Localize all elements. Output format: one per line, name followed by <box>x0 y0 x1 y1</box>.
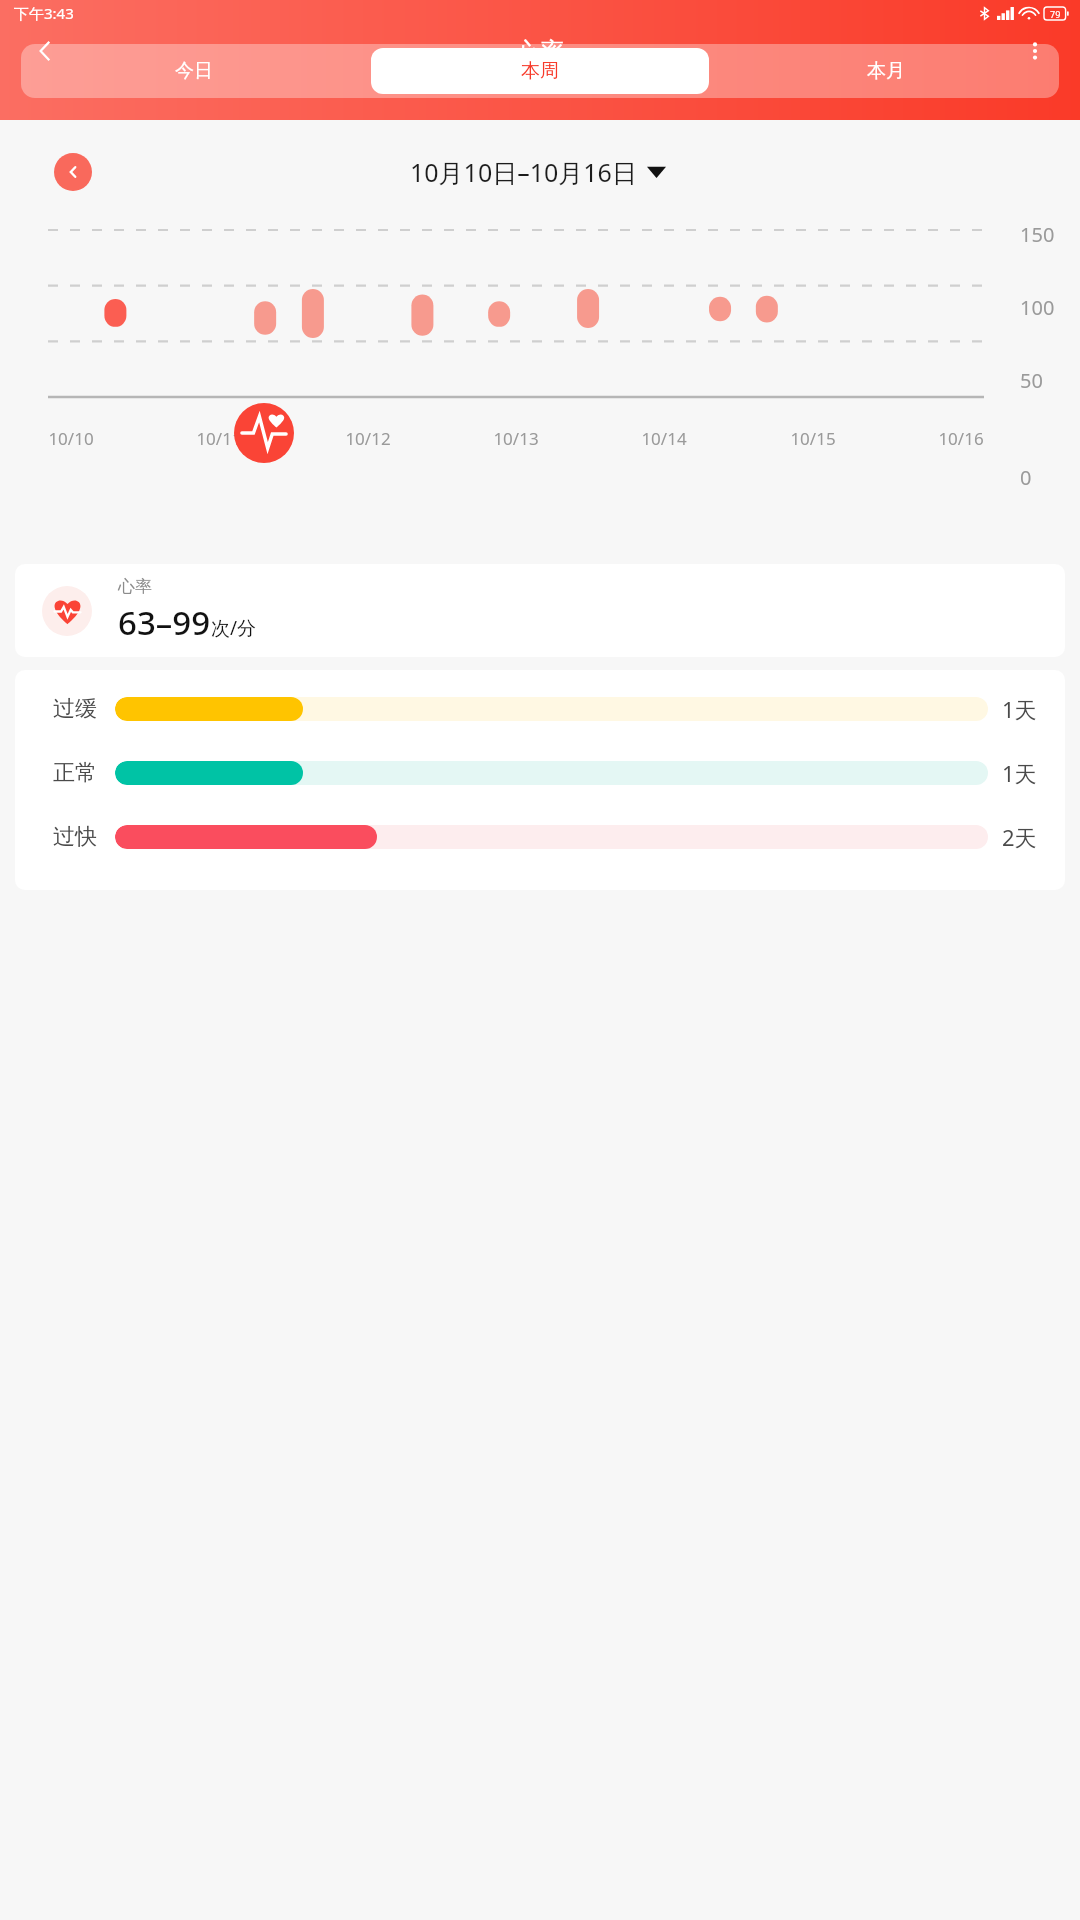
staticText: 过快 <box>53 823 97 851</box>
staticText: 63–99 <box>118 600 211 645</box>
button[interactable]: 今日 <box>25 48 363 94</box>
button[interactable]: 心率 <box>15 564 1065 657</box>
staticText: 10月10日–10月16日 <box>410 155 637 189</box>
staticText: 今日 <box>175 59 213 83</box>
button[interactable]: 本周 <box>371 48 709 94</box>
staticText: 79 <box>1050 8 1061 20</box>
button[interactable]: 正常 <box>53 756 1037 790</box>
staticText: 次/分 <box>211 615 257 641</box>
staticText: 10/11 <box>196 427 242 450</box>
button[interactable]: 本月 <box>717 48 1055 94</box>
staticText: 10/14 <box>641 427 687 450</box>
staticText: 心率 <box>118 576 152 597</box>
staticText: 10/15 <box>790 427 836 450</box>
staticText: 10/13 <box>493 427 539 450</box>
staticText: 0 <box>1020 464 1032 491</box>
button[interactable]: 过快 <box>53 820 1037 854</box>
staticText: 2天 <box>1002 822 1037 852</box>
staticText: 心率 <box>515 36 565 67</box>
staticText: 正常 <box>53 759 97 787</box>
staticText: 100 <box>1020 294 1055 321</box>
button[interactable]: More options <box>1012 28 1058 74</box>
button[interactable]: Back <box>22 28 68 74</box>
button[interactable]: 10月10日–10月16日 <box>410 155 666 189</box>
button[interactable]: Previous week <box>54 153 92 191</box>
staticText: 10/12 <box>345 427 391 450</box>
button[interactable]: 过缓 <box>53 692 1037 726</box>
staticText: 本周 <box>521 59 559 83</box>
staticText: 过缓 <box>53 695 97 723</box>
staticText: 本月 <box>867 59 905 83</box>
staticText: 50 <box>1020 367 1043 394</box>
staticText: 下午3:43 <box>14 3 74 23</box>
staticText: 10/10 <box>48 427 94 450</box>
staticText: 1天 <box>1002 694 1037 724</box>
staticText: 1天 <box>1002 758 1037 788</box>
staticText: 150 <box>1020 221 1055 248</box>
staticText: 10/16 <box>938 427 984 450</box>
button[interactable]: Measure heart rate <box>234 403 294 463</box>
